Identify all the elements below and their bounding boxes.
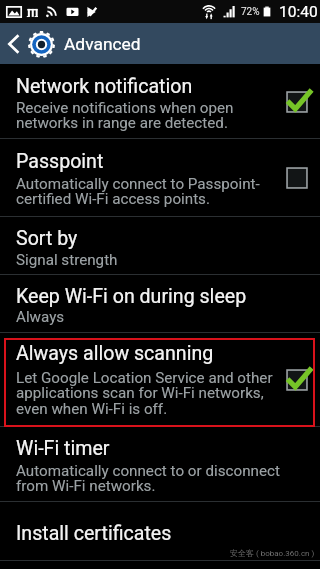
staticText: Advanced	[64, 34, 141, 54]
staticText: Automatically connect to or disconnect f…	[16, 462, 280, 495]
staticText: Passpoint	[16, 150, 104, 173]
staticText: Wi-Fi timer	[16, 437, 110, 460]
staticText: Always	[16, 308, 65, 326]
staticText: Keep Wi-Fi on during sleep	[16, 285, 247, 308]
button[interactable]: Toggle	[280, 363, 314, 397]
button[interactable]: Wi-Fi timer	[0, 427, 320, 502]
button[interactable]: Keep Wi-Fi on during sleep	[0, 275, 320, 333]
staticText: 安全客 ( bobao.360.cn )	[230, 548, 315, 558]
button[interactable]: Install certificates	[0, 502, 320, 560]
staticText: Receive notifications when open networks…	[16, 99, 234, 132]
button[interactable]: Always allow scanning	[0, 333, 320, 427]
staticText: Network notification	[16, 75, 193, 98]
button[interactable]: Sort by	[0, 217, 320, 275]
button[interactable]: Toggle	[280, 85, 314, 119]
staticText: 10:40	[279, 3, 318, 21]
staticText: Signal strength	[16, 251, 118, 269]
button[interactable]: Toggle	[280, 161, 314, 195]
staticText: Sort by	[16, 227, 78, 250]
staticText: 72%	[241, 6, 260, 18]
staticText: Let Google Location Service and other ap…	[16, 369, 273, 418]
staticText: Install certificates	[16, 522, 172, 545]
button[interactable]: Back	[0, 31, 26, 57]
staticText: Always allow scanning	[16, 342, 214, 365]
button[interactable]: Network notification	[0, 64, 320, 139]
staticText: Automatically connect to Passpoint- cert…	[16, 175, 260, 208]
button[interactable]: Passpoint	[0, 139, 320, 217]
